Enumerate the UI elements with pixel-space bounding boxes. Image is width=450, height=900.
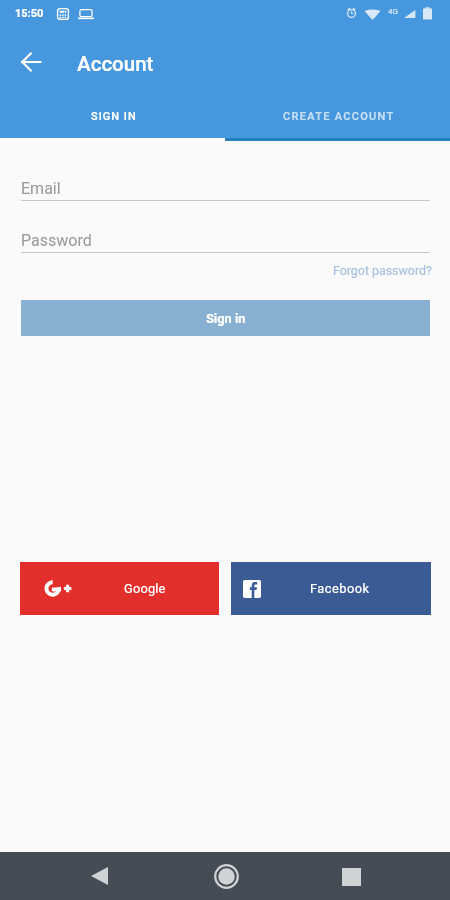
staticText: CREATE ACCOUNT <box>283 110 395 123</box>
button[interactable]: Google <box>20 562 219 615</box>
button[interactable]: SIGN IN <box>1 94 226 138</box>
staticText: Sign in <box>206 311 246 326</box>
staticText: Email <box>21 179 61 198</box>
button[interactable]: Home <box>186 852 266 900</box>
staticText: Password <box>21 231 92 250</box>
button[interactable]: Facebook <box>231 562 431 615</box>
button[interactable]: Back <box>59 852 139 900</box>
button[interactable]: CREATE ACCOUNT <box>226 94 450 138</box>
staticText: Google <box>124 581 166 596</box>
staticText: 15:50 <box>15 7 44 20</box>
staticText: Facebook <box>310 581 370 596</box>
button[interactable]: Back <box>10 41 52 83</box>
staticText: 4G <box>388 7 398 16</box>
staticText: SIGN IN <box>91 110 137 123</box>
staticText: Forgot password? <box>333 263 432 278</box>
button[interactable]: Sign in <box>21 300 430 336</box>
staticText: Account <box>77 52 154 76</box>
button[interactable]: Forgot password? <box>333 263 432 278</box>
button[interactable]: Recents <box>311 852 391 900</box>
